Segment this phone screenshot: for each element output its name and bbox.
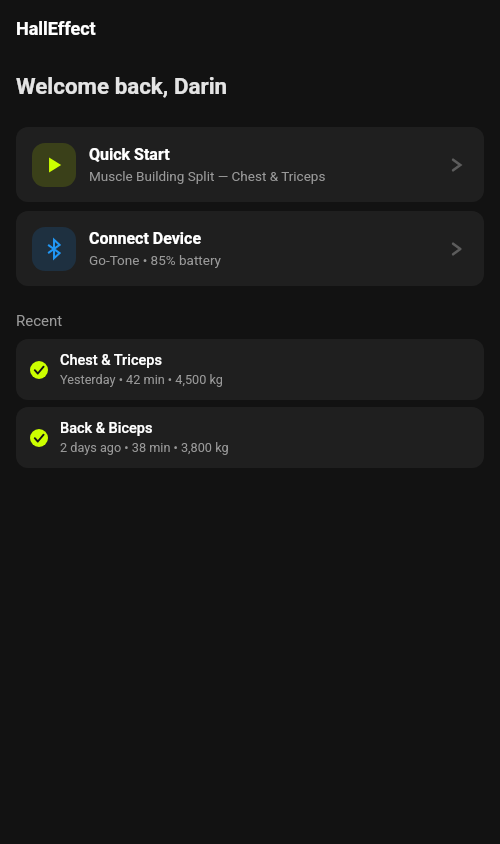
other: Completed [30,361,48,379]
staticText: 2 days ago • 38 min • 3,800 kg [60,440,229,455]
staticText: Recent [16,312,63,330]
staticText: Connect Device [89,229,202,248]
other: Open Connect Device [450,239,470,259]
button[interactable]: Bluetooth [16,211,484,286]
staticText: Muscle Building Split — Chest & Triceps [89,168,326,184]
button[interactable]: Completed [16,339,484,400]
button[interactable]: Completed [16,407,484,468]
staticText: Quick Start [89,145,170,164]
staticText: Yesterday • 42 min • 4,500 kg [60,372,223,387]
staticText: HallEffect [16,18,96,39]
button[interactable]: Start workout [16,127,484,202]
other: Open Quick Start [450,155,470,175]
other: Bluetooth [42,237,66,261]
other: Start workout [42,153,66,177]
staticText: Chest & Triceps [60,352,162,369]
staticText: Back & Biceps [60,420,153,437]
staticText: Go-Tone • 85% battery [89,252,222,268]
other: Completed [30,429,48,447]
staticText: Welcome back, Darin [16,73,228,99]
